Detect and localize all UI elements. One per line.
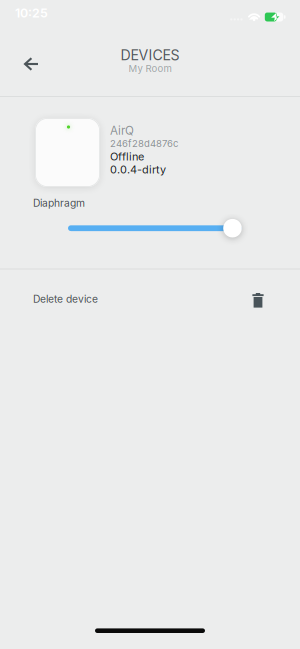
- staticText: My Room: [128, 63, 171, 74]
- staticText: DEVICES: [120, 46, 179, 63]
- staticText: 10:25: [15, 6, 48, 21]
- staticText: AirQ: [110, 123, 134, 137]
- button[interactable]: Back: [0, 45, 38, 83]
- staticText: Diaphragm: [33, 197, 85, 209]
- button[interactable]: Delete device: [0, 269, 300, 325]
- staticText: 246f28d4876c: [110, 138, 178, 149]
- staticText: Offline: [110, 150, 144, 163]
- staticText: Delete device: [33, 293, 98, 305]
- button[interactable]: Diaphragm slider: [223, 219, 242, 237]
- staticText: 0.0.4-dirty: [110, 163, 166, 176]
